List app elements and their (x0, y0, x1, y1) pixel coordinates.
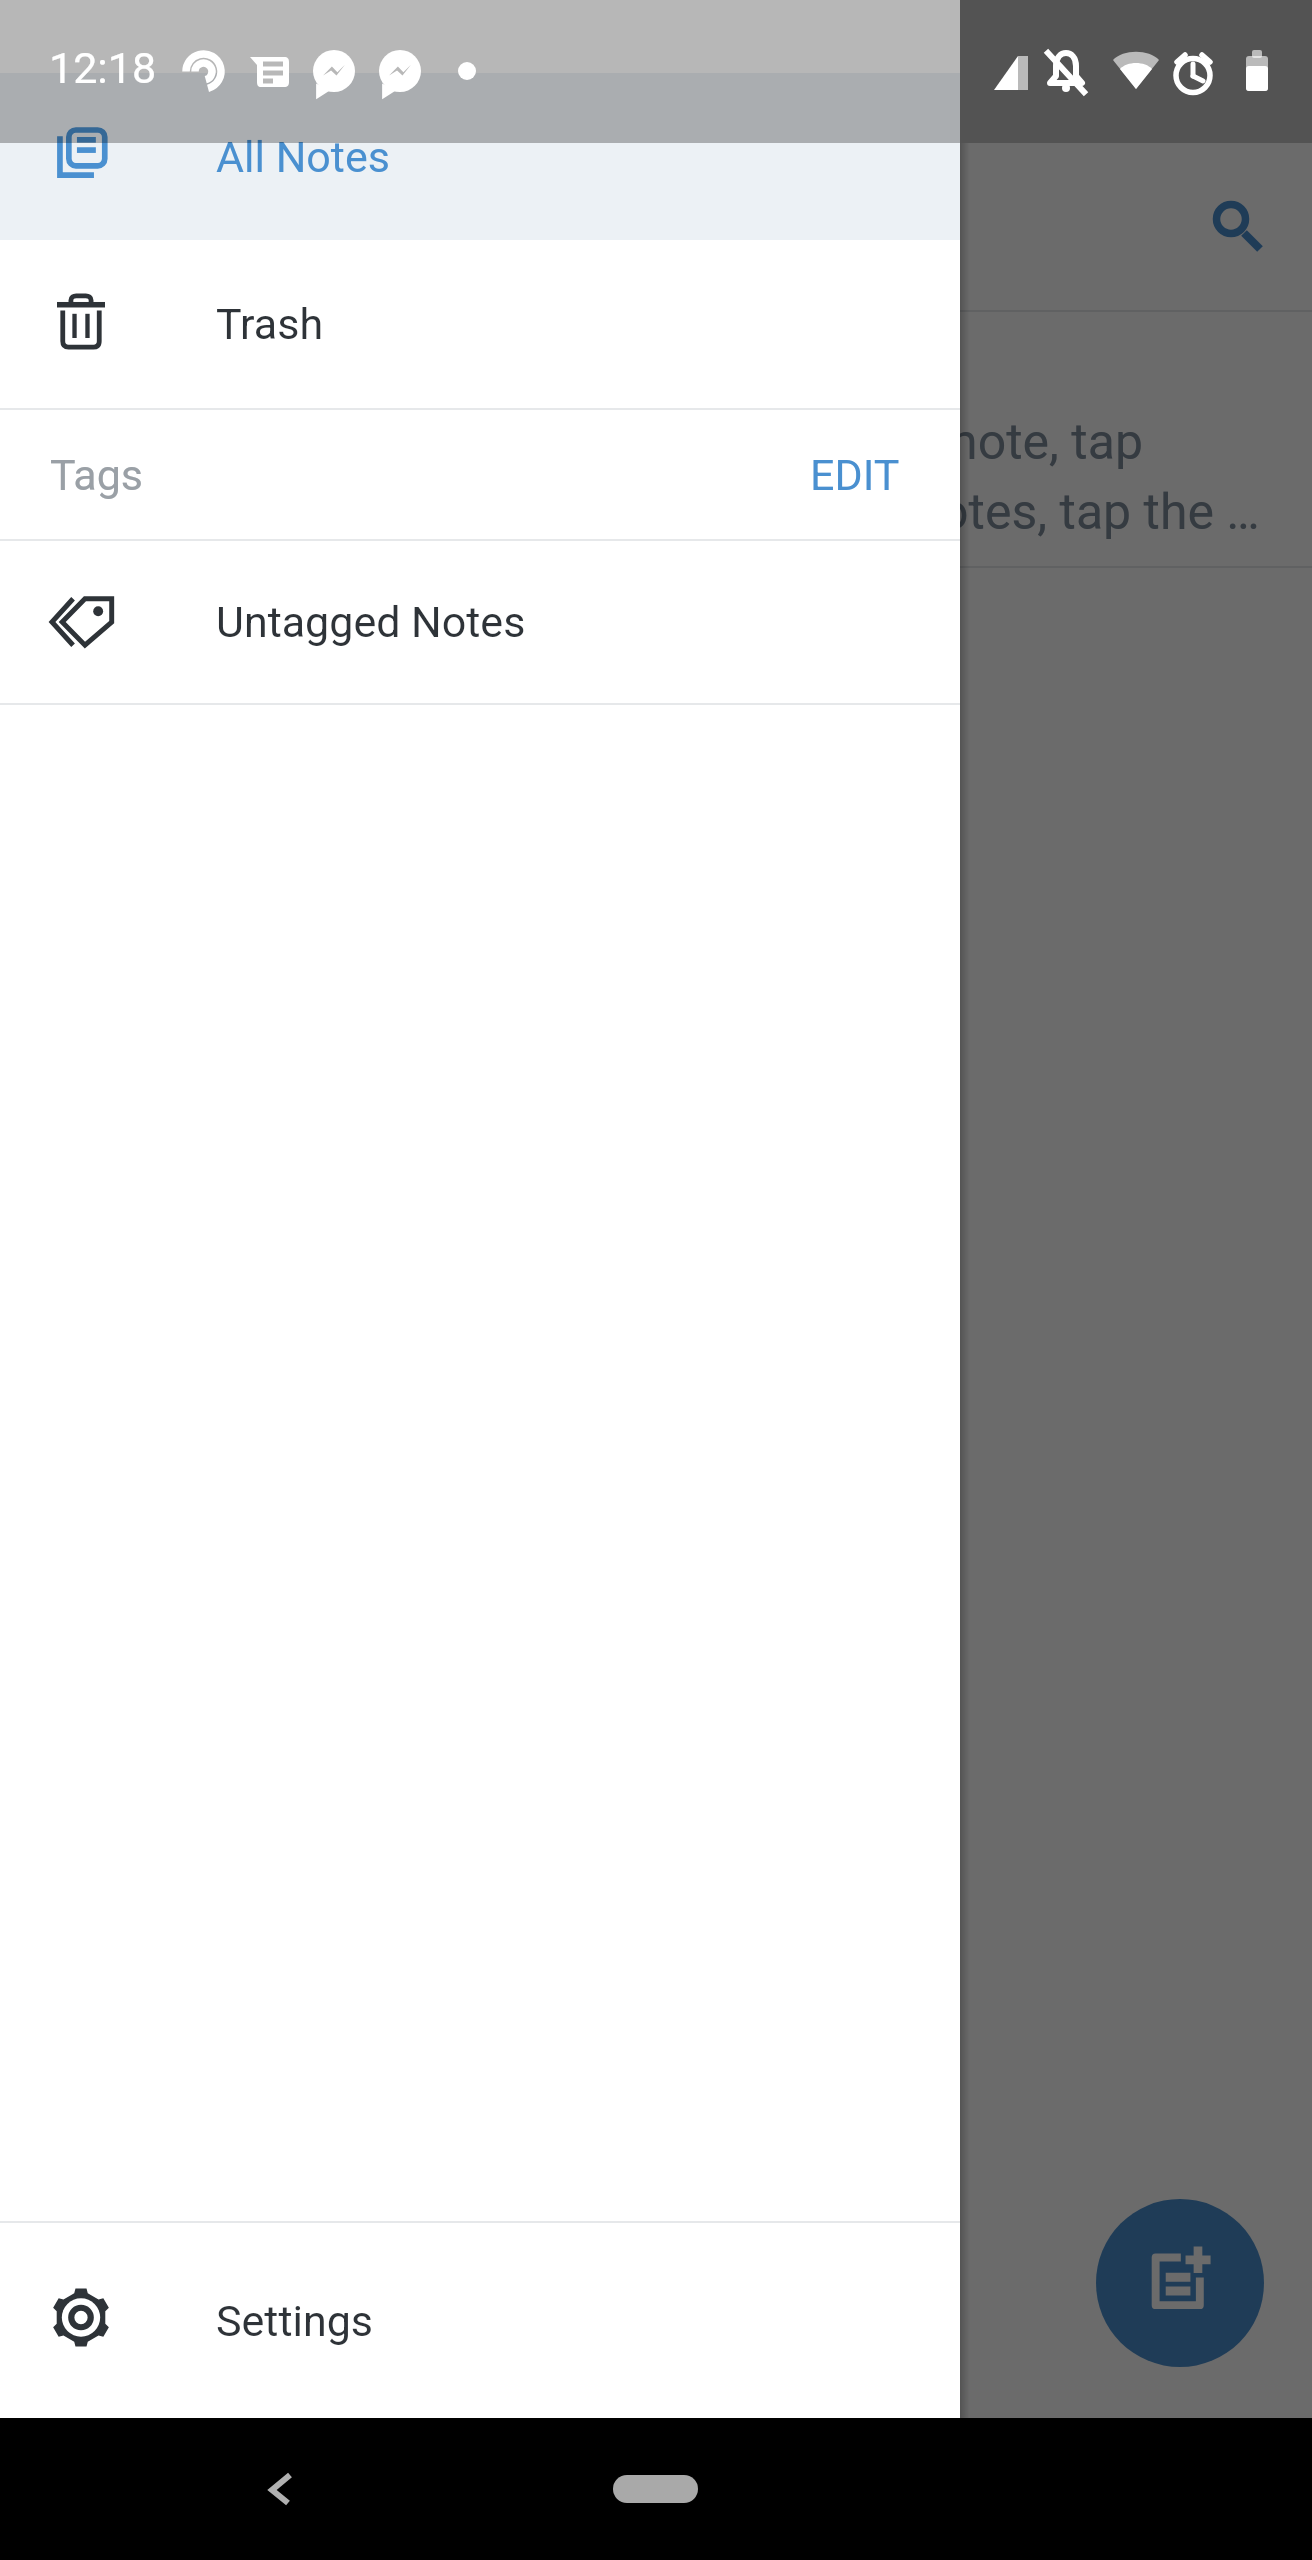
button[interactable]: Trash (0, 240, 960, 408)
staticText: 12:18 (49, 43, 157, 93)
staticText: Settings (216, 2296, 374, 2346)
staticText: Tags (50, 450, 144, 500)
button[interactable]: Untagged Notes (0, 541, 960, 703)
button[interactable]: Settings (0, 2223, 960, 2418)
button[interactable]: Search (1175, 163, 1287, 275)
button[interactable]: Back (221, 2418, 341, 2560)
staticText: Trash (216, 299, 324, 349)
staticText: All Notes (216, 132, 390, 182)
button[interactable]: All Notes (0, 73, 960, 240)
button[interactable]: EDIT (786, 428, 924, 522)
staticText: Tap this note to open it. To create a ne… (53, 413, 1260, 542)
staticText: EDIT (810, 450, 900, 500)
button[interactable]: New note (1096, 2199, 1264, 2367)
button[interactable]: Home (573, 2418, 738, 2560)
staticText: Untagged Notes (216, 597, 526, 647)
